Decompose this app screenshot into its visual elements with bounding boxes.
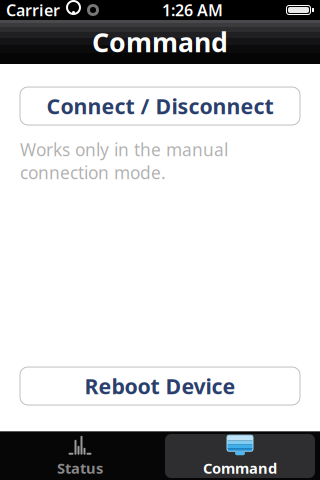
button[interactable]: Command (160, 432, 320, 480)
staticText: Command (92, 24, 228, 60)
staticText: Connect / Disconnect (46, 92, 273, 120)
staticText: Works only in the manual connection mode… (20, 138, 228, 184)
button[interactable]: Connect / Disconnect (20, 87, 300, 125)
staticText: Status (57, 458, 103, 478)
button[interactable]: Reboot Device (20, 367, 300, 405)
staticText: 1:26 AM (162, 0, 223, 21)
staticText: Carrier (6, 0, 60, 21)
staticText: Command (203, 458, 277, 478)
staticText: Reboot Device (84, 372, 235, 400)
button[interactable]: Status (0, 432, 160, 480)
